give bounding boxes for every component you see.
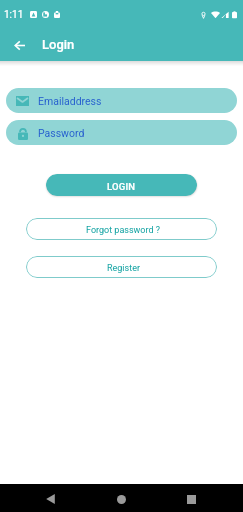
- button[interactable]: LOGIN: [46, 174, 197, 196]
- button[interactable]: Password: [6, 120, 237, 145]
- staticText: 1:11: [4, 9, 24, 21]
- staticText: Password: [38, 127, 85, 139]
- button[interactable]: Back: [0, 26, 38, 63]
- button[interactable]: Recent apps: [173, 484, 209, 512]
- button[interactable]: Back: [32, 484, 68, 512]
- button[interactable]: Home: [103, 484, 139, 512]
- staticText: Forgot password ?: [86, 225, 161, 236]
- staticText: Register: [107, 263, 140, 274]
- button[interactable]: Register: [26, 256, 217, 278]
- button[interactable]: Emailaddress: [6, 88, 237, 113]
- staticText: Login: [42, 37, 75, 52]
- staticText: Emailaddress: [38, 95, 102, 107]
- button[interactable]: Forgot password ?: [26, 218, 217, 240]
- staticText: LOGIN: [107, 181, 136, 192]
